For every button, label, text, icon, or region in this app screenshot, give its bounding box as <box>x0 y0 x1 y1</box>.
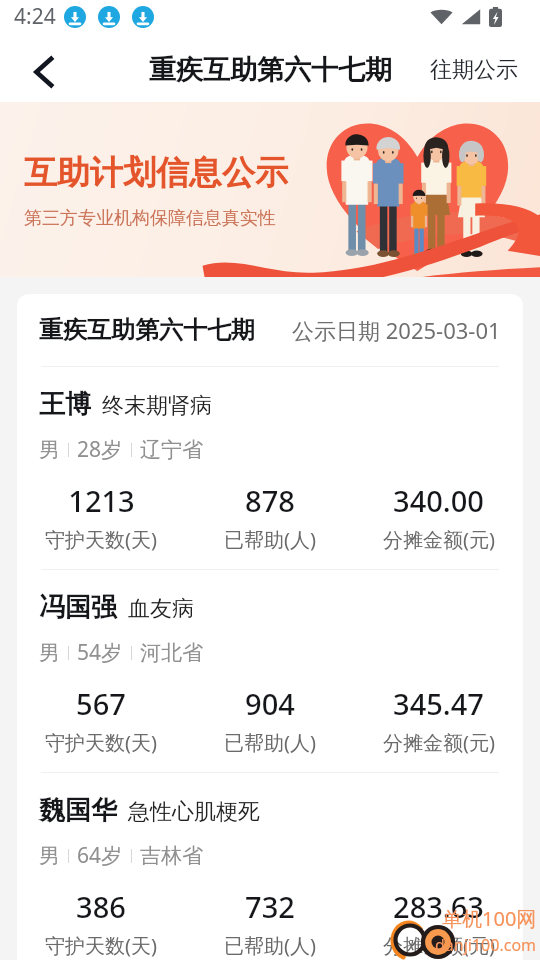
staticText: 守护天数(天) <box>45 729 157 756</box>
staticText: 340.00 <box>393 481 484 520</box>
staticText: danji100.com <box>435 934 537 956</box>
button[interactable]: 冯国强 <box>17 570 523 772</box>
staticText: 732 <box>245 887 295 926</box>
button[interactable]: 魏国华 <box>17 773 523 960</box>
staticText: 河北省 <box>140 640 203 666</box>
staticText: 4:24 <box>14 2 56 31</box>
staticText: 分摊金额(元) <box>383 526 495 553</box>
button[interactable]: 王博 <box>17 367 523 569</box>
staticText: 567 <box>76 684 126 723</box>
staticText: 64岁 <box>77 841 123 870</box>
staticText: 第三方专业机构保障信息真实性 <box>24 207 276 230</box>
staticText: 男 <box>39 843 60 869</box>
staticText: 互助计划信息公示 <box>24 152 288 194</box>
button[interactable]: Back <box>17 46 69 98</box>
staticText: 终末期肾病 <box>102 392 212 420</box>
staticText: 28岁 <box>77 435 123 464</box>
staticText: 已帮助(人) <box>224 729 316 756</box>
staticText: 345.47 <box>393 684 484 723</box>
staticText: 男 <box>39 640 60 666</box>
staticText: 公示日期 2025-03-01 <box>292 315 501 345</box>
staticText: 分摊金额(元) <box>383 932 495 959</box>
staticText: 878 <box>245 481 295 520</box>
staticText: 54岁 <box>77 638 123 667</box>
staticText: 吉林省 <box>140 843 203 869</box>
staticText: 386 <box>76 887 126 926</box>
staticText: 魏国华 <box>39 794 117 827</box>
staticText: 283.63 <box>393 887 484 926</box>
staticText: 急性心肌梗死 <box>128 798 260 826</box>
staticText: 重疾互助第六十七期 <box>39 315 255 345</box>
staticText: 1213 <box>68 481 135 520</box>
staticText: 904 <box>245 684 295 723</box>
button[interactable]: 往期公示 <box>410 48 538 92</box>
staticText: 重疾互助第六十七期 <box>149 53 392 87</box>
staticText: 冯国强 <box>39 591 117 624</box>
staticText: 血友病 <box>128 595 194 623</box>
staticText: 单机100网 <box>442 905 537 932</box>
staticText: 已帮助(人) <box>224 932 316 959</box>
staticText: 往期公示 <box>430 56 518 84</box>
staticText: 守护天数(天) <box>45 932 157 959</box>
staticText: 守护天数(天) <box>45 526 157 553</box>
staticText: 辽宁省 <box>140 437 203 463</box>
staticText: 分摊金额(元) <box>383 729 495 756</box>
staticText: 已帮助(人) <box>224 526 316 553</box>
staticText: 男 <box>39 437 60 463</box>
staticText: 王博 <box>39 388 91 421</box>
